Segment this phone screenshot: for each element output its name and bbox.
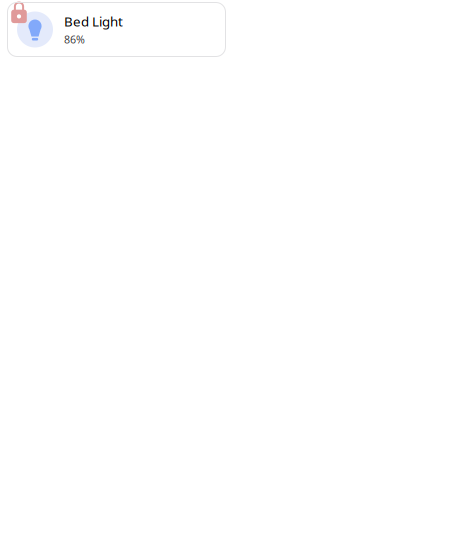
staticText: Bed Light xyxy=(64,13,123,30)
staticText: 86% xyxy=(64,32,85,46)
button[interactable]: Bed Light xyxy=(7,2,225,56)
